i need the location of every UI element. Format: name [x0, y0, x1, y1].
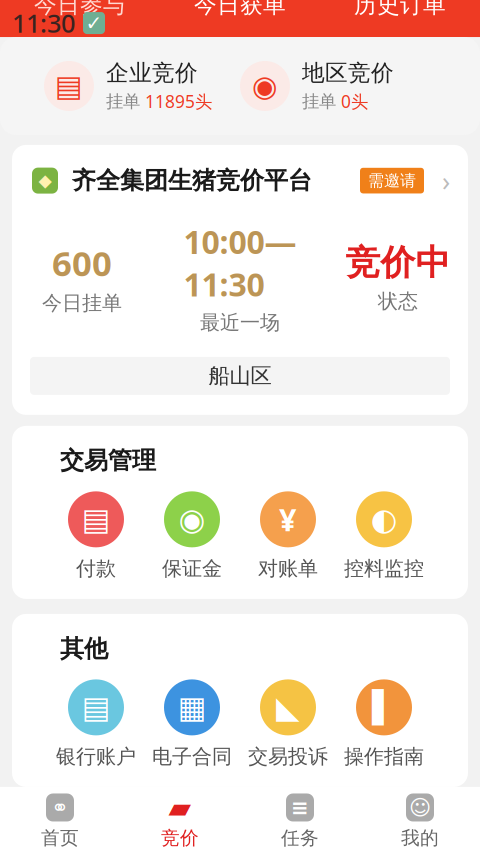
button[interactable]: ◉ [240, 59, 436, 113]
staticText: 首页 [41, 826, 79, 849]
staticText: 其他 [60, 634, 108, 663]
staticText: 11:30 [12, 6, 75, 40]
staticText: 任务 [281, 826, 319, 849]
button[interactable]: ☺ [360, 792, 480, 849]
button[interactable]: ▤ [48, 679, 144, 769]
staticText: 我的 [401, 826, 439, 849]
staticText: 挂单 [302, 91, 336, 112]
staticText: 地区竞价 [302, 59, 394, 87]
staticText: 需邀请 [368, 171, 416, 190]
staticText: ✓ [85, 12, 102, 34]
button[interactable]: ▤ [48, 491, 144, 581]
staticText: 电子合同 [152, 744, 232, 769]
staticText: ◉ [252, 69, 278, 103]
staticText: 交易投诉 [248, 744, 328, 769]
button[interactable]: 船山区 [30, 357, 450, 395]
staticText: 竞价 [161, 826, 199, 849]
button[interactable]: ▦ [144, 679, 240, 769]
staticText: 付款 [76, 556, 116, 581]
staticText: ▤ [81, 502, 110, 537]
staticText: 今日挂单 [42, 291, 122, 315]
staticText: ▤ [81, 690, 110, 725]
staticText: 600 [52, 240, 112, 286]
staticText: ◆ [38, 171, 51, 190]
button[interactable]: 今日获单 [160, 0, 320, 19]
staticText: ▦ [177, 690, 206, 725]
staticText: ☺ [409, 795, 431, 820]
staticText: 对账单 [258, 556, 318, 581]
staticText: 企业竞价 [106, 59, 198, 87]
button[interactable]: ◐ [336, 491, 432, 581]
button[interactable]: ⚭ [0, 792, 120, 849]
staticText: 竞价中 [345, 241, 450, 284]
staticText: ◉ [178, 502, 205, 537]
button[interactable]: ◣ [240, 679, 336, 769]
staticText: 船山区 [208, 363, 271, 389]
button[interactable]: 历史订单 [320, 0, 480, 19]
staticText: ◐ [370, 502, 397, 537]
staticText: ▌ [372, 690, 396, 725]
button[interactable]: 今日参与 [0, 0, 160, 19]
staticText: 最近一场 [200, 310, 280, 335]
button[interactable]: ◆ [12, 145, 468, 198]
button[interactable]: ▰ [120, 792, 240, 849]
staticText: › [442, 163, 450, 198]
staticText: 今日参与 [34, 0, 126, 19]
staticText: 0头 [341, 90, 368, 113]
staticText: 控料监控 [344, 556, 424, 581]
staticText: ≡ [291, 795, 309, 820]
staticText: 保证金 [162, 556, 222, 581]
staticText: ▰ [168, 791, 191, 824]
staticText: 挂单 [106, 91, 140, 112]
staticText: 齐全集团生猪竞价平台 [72, 166, 312, 195]
staticText: 交易管理 [60, 446, 156, 475]
staticText: ▤ [55, 69, 83, 103]
staticText: ¥ [279, 499, 297, 540]
button[interactable]: ≡ [240, 792, 360, 849]
staticText: 11895头 [145, 90, 212, 113]
staticText: 操作指南 [344, 744, 424, 769]
staticText: 10:00—11:30 [183, 220, 296, 305]
staticText: 今日获单 [194, 0, 286, 19]
button[interactable]: ¥ [240, 491, 336, 581]
staticText: 银行账户 [56, 744, 136, 769]
staticText: ◣ [276, 690, 300, 725]
staticText: 状态 [378, 289, 418, 314]
button[interactable]: ▌ [336, 679, 432, 769]
button[interactable]: ▤ [44, 59, 240, 113]
staticText: 历史订单 [354, 0, 446, 19]
button[interactable]: ◉ [144, 491, 240, 581]
staticText: ⚭ [51, 795, 69, 820]
